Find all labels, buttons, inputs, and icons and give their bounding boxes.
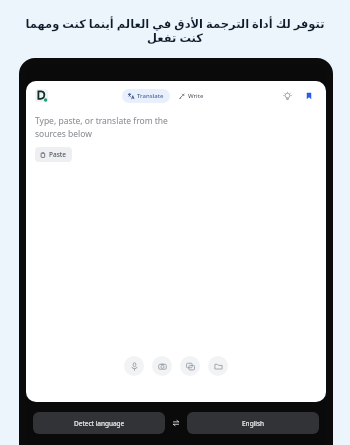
- button[interactable]: Tips: [279, 88, 295, 104]
- button[interactable]: Detect language: [33, 412, 165, 434]
- button[interactable]: Voice input: [124, 356, 144, 376]
- staticText: تتوفر لك أداة الترجمة الأدق في العالم أي…: [14, 16, 336, 46]
- button[interactable]: Saved: [301, 88, 317, 104]
- staticText: English: [242, 419, 265, 428]
- button[interactable]: Swap languages: [165, 412, 187, 434]
- button[interactable]: Camera: [152, 356, 172, 376]
- button[interactable]: Conversation: [180, 356, 200, 376]
- button[interactable]: Documents: [208, 356, 228, 376]
- button[interactable]: Paste: [35, 147, 72, 162]
- button[interactable]: Translate: [122, 89, 170, 103]
- button[interactable]: English: [187, 412, 319, 434]
- staticText: Detect language: [74, 419, 125, 428]
- staticText: Paste: [49, 150, 67, 159]
- button[interactable]: Write: [175, 89, 208, 103]
- staticText: Translate: [137, 92, 164, 100]
- staticText: Type, paste, or translate from the sourc…: [35, 115, 168, 140]
- staticText: Write: [188, 92, 204, 100]
